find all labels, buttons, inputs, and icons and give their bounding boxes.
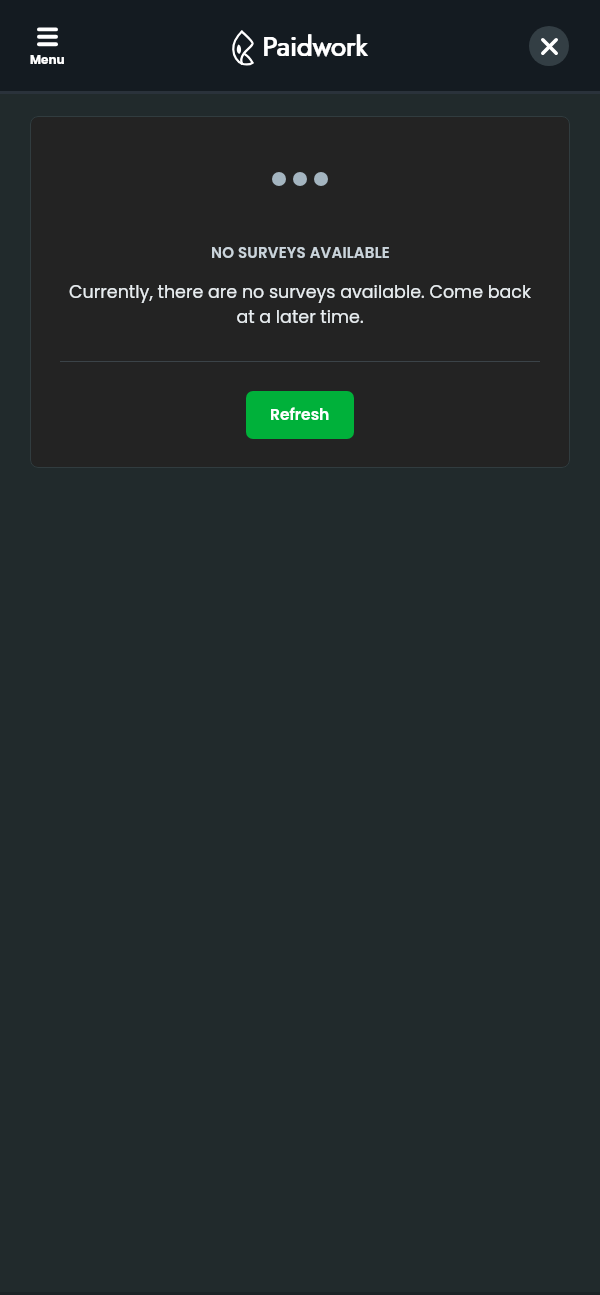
button[interactable]: Refresh [246, 391, 354, 439]
staticText: Menu [30, 51, 65, 68]
staticText: Paidwork [262, 27, 368, 67]
button[interactable]: Menu [24, 24, 71, 71]
button[interactable]: Close [529, 26, 569, 66]
button[interactable]: Paidwork [232, 27, 368, 67]
staticText: Paidwork [263, 27, 369, 67]
staticText: NO SURVEYS AVAILABLE [211, 242, 390, 263]
staticText: Currently, there are no surveys availabl… [67, 280, 533, 329]
staticText: Refresh [270, 404, 330, 426]
